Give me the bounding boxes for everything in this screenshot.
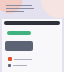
button[interactable] [4,21,60,25]
button[interactable] [8,56,62,62]
button[interactable] [5,41,33,51]
button[interactable] [7,31,31,35]
button[interactable] [8,62,62,68]
